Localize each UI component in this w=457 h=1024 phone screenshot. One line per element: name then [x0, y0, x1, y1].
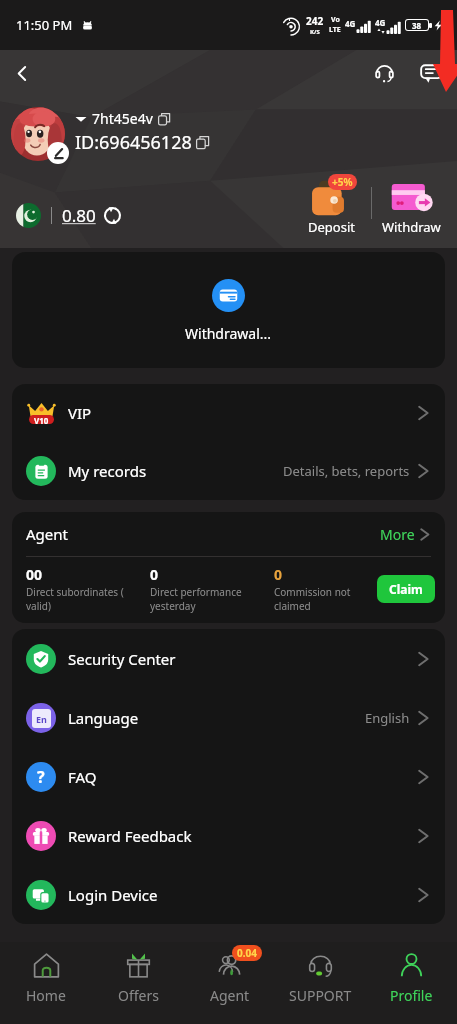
staticText: Deposit: [308, 218, 355, 236]
staticText: Claim: [389, 581, 423, 597]
button[interactable]: Reward Feedback: [12, 806, 445, 865]
button[interactable]: Customer support: [366, 55, 402, 91]
staticText: 242: [306, 14, 324, 28]
staticText: 0.80: [62, 204, 96, 227]
staticText: 7ht45e4v: [92, 109, 153, 128]
button[interactable]: En: [12, 688, 445, 747]
button[interactable]: Edit avatar: [47, 142, 69, 164]
staticText: LTE: [329, 25, 341, 35]
button[interactable]: Security Center: [12, 629, 445, 688]
staticText: 11:50 PM: [16, 16, 73, 34]
staticText: Direct performance yesterday: [150, 585, 242, 613]
button[interactable]: Back: [4, 55, 40, 91]
staticText: VIP: [68, 403, 92, 423]
staticText: 0: [150, 565, 159, 584]
staticText: Agent: [210, 986, 250, 1005]
staticText: En: [36, 713, 47, 725]
button[interactable]: Messages: [413, 55, 449, 91]
staticText: Reward Feedback: [68, 826, 192, 846]
staticText: 00: [26, 565, 43, 584]
button[interactable]: Claim: [377, 575, 435, 603]
staticText: 38: [412, 20, 422, 30]
staticText: 0: [274, 565, 283, 584]
staticText: Vo: [331, 15, 340, 25]
button[interactable]: Offers: [92, 942, 184, 1024]
staticText: Agent: [26, 524, 68, 544]
staticText: FAQ: [68, 767, 97, 787]
button[interactable]: Withdrawal...: [12, 252, 445, 368]
staticText: Security Center: [68, 649, 176, 669]
staticText: Direct subordinates ( valid): [26, 585, 124, 613]
staticText: Language: [68, 708, 139, 728]
button[interactable]: ?: [12, 747, 445, 806]
button[interactable]: Login Device: [12, 865, 445, 924]
staticText: English: [365, 709, 410, 727]
staticText: Details, bets, reports: [283, 462, 410, 480]
button[interactable]: My records: [12, 442, 445, 500]
staticText: V10: [34, 415, 49, 426]
staticText: Login Device: [68, 885, 158, 905]
button[interactable]: Profile: [366, 942, 457, 1024]
staticText: Commission not claimed: [274, 585, 351, 613]
button[interactable]: V10: [12, 384, 445, 442]
staticText: More: [380, 525, 415, 544]
staticText: ?: [37, 766, 45, 788]
staticText: K/S: [310, 28, 320, 36]
staticText: My records: [68, 461, 147, 481]
button[interactable]: Agent: [12, 512, 445, 556]
button[interactable]: Home: [0, 942, 92, 1024]
staticText: Offers: [118, 986, 159, 1005]
staticText: 4G: [375, 17, 386, 28]
button[interactable]: 0.04: [184, 942, 275, 1024]
staticText: SUPPORT: [289, 986, 352, 1005]
staticText: Home: [26, 986, 66, 1005]
button[interactable]: Copy ID: [196, 136, 209, 149]
button[interactable]: SUPPORT: [275, 942, 366, 1024]
staticText: +5%: [332, 175, 353, 189]
staticText: ID:696456128: [75, 130, 192, 155]
button[interactable]: Withdraw: [372, 174, 451, 241]
button[interactable]: Copy username: [158, 113, 170, 125]
staticText: 0.04: [237, 946, 257, 960]
staticText: Withdrawal...: [185, 324, 272, 343]
staticText: Profile: [390, 986, 433, 1005]
staticText: Withdraw: [382, 218, 441, 236]
button[interactable]: +5%: [291, 174, 371, 241]
button[interactable]: 0.80: [16, 203, 122, 228]
staticText: 4G: [345, 18, 356, 29]
